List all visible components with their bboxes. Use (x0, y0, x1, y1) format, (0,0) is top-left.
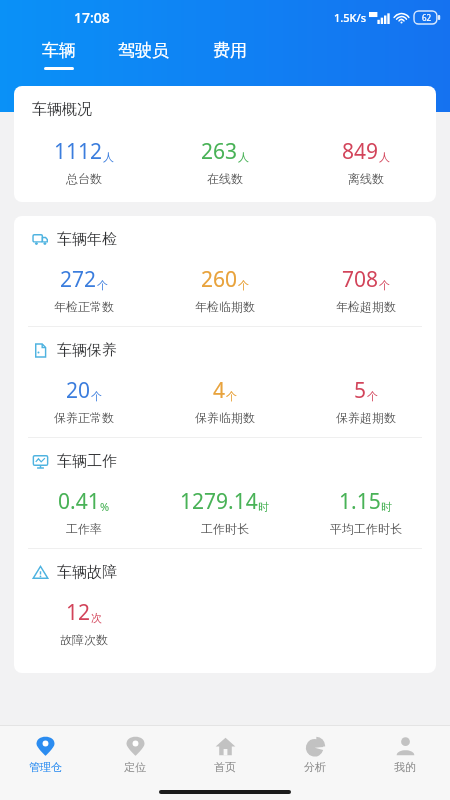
staticText: 260 (201, 265, 238, 294)
staticText: 272 (60, 265, 97, 294)
button[interactable]: 1112 (14, 137, 154, 186)
button[interactable]: 驾驶员 (116, 36, 171, 74)
button[interactable]: 分析 (270, 726, 360, 784)
staticText: 个 (97, 278, 108, 292)
staticText: 个 (226, 389, 237, 403)
button[interactable]: 车辆 (40, 36, 78, 74)
staticText: 个 (367, 389, 378, 403)
button[interactable]: 车辆保养 (14, 327, 436, 437)
staticText: 人 (103, 150, 114, 164)
staticText: 个 (91, 389, 102, 403)
button[interactable]: 我的 (360, 726, 450, 784)
staticText: 20 (66, 376, 91, 405)
button[interactable]: 260 (154, 265, 295, 314)
button[interactable]: 263 (154, 137, 295, 186)
staticText: 17:08 (74, 8, 110, 27)
staticText: 62 (422, 12, 432, 23)
staticText: 车辆保养 (57, 341, 117, 360)
staticText: 263 (201, 137, 238, 166)
staticText: 车辆 (42, 40, 76, 61)
staticText: 保养正常数 (54, 410, 114, 425)
staticText: 工作率 (66, 521, 102, 536)
button[interactable]: 车辆工作 (14, 438, 436, 548)
staticText: 总台数 (66, 171, 102, 186)
staticText: 1.15 (339, 487, 381, 516)
staticText: 1112 (54, 137, 103, 166)
button[interactable]: 车辆故障 (14, 549, 436, 659)
button[interactable]: 20 (14, 376, 154, 425)
button[interactable]: 车辆概况 (14, 86, 436, 202)
staticText: 故障次数 (60, 632, 108, 647)
staticText: 车辆概况 (32, 100, 92, 119)
staticText: 0.41 (58, 487, 100, 516)
button[interactable]: 849 (295, 137, 436, 186)
button[interactable]: 1.15 (295, 487, 436, 536)
staticText: 个 (238, 278, 249, 292)
button[interactable]: 管理仓 (0, 726, 90, 784)
staticText: 保养超期数 (336, 410, 396, 425)
staticText: 我的 (394, 760, 416, 774)
staticText: 次 (91, 611, 102, 625)
button[interactable]: 1279.14 (154, 487, 295, 536)
staticText: % (100, 499, 110, 514)
staticText: 5 (354, 376, 367, 405)
staticText: 首页 (214, 760, 236, 774)
staticText: 4 (213, 376, 226, 405)
staticText: 708 (342, 265, 379, 294)
button[interactable]: 708 (295, 265, 436, 314)
staticText: 在线数 (207, 171, 243, 186)
staticText: 人 (379, 150, 390, 164)
staticText: 车辆工作 (57, 452, 117, 471)
button[interactable]: 0.41 (14, 487, 154, 536)
staticText: 12 (66, 598, 91, 627)
staticText: 年检超期数 (336, 299, 396, 314)
button[interactable]: 12 (14, 598, 154, 647)
staticText: 管理仓 (29, 760, 62, 774)
staticText: 时 (381, 500, 392, 514)
staticText: 时 (258, 500, 269, 514)
button[interactable]: 首页 (180, 726, 270, 784)
button[interactable]: 费用 (211, 36, 249, 74)
button[interactable]: 定位 (90, 726, 180, 784)
staticText: 车辆故障 (57, 563, 117, 582)
staticText: 驾驶员 (118, 40, 169, 61)
staticText: 平均工作时长 (330, 521, 402, 536)
button[interactable]: 5 (295, 376, 436, 425)
staticText: 849 (342, 137, 379, 166)
staticText: 个 (379, 278, 390, 292)
staticText: 年检临期数 (195, 299, 255, 314)
button[interactable]: 车辆年检 (14, 216, 436, 326)
staticText: 工作时长 (201, 521, 249, 536)
staticText: 保养临期数 (195, 410, 255, 425)
staticText: 年检正常数 (54, 299, 114, 314)
staticText: 人 (238, 150, 249, 164)
button[interactable]: 4 (154, 376, 295, 425)
staticText: 1279.14 (180, 487, 258, 516)
staticText: 分析 (304, 760, 326, 774)
staticText: 车辆年检 (57, 230, 117, 249)
staticText: 费用 (213, 40, 247, 61)
staticText: 定位 (124, 760, 146, 774)
staticText: 1.5K/s (334, 10, 367, 25)
button[interactable]: 272 (14, 265, 154, 314)
staticText: 离线数 (348, 171, 384, 186)
